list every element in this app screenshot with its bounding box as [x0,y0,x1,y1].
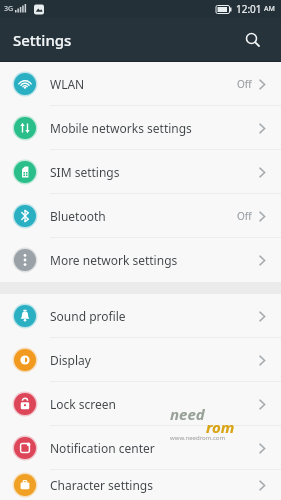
staticText: AM [264,4,275,14]
button[interactable]: Sound profile [0,294,281,338]
staticText: rom [206,417,235,437]
staticText: SIM settings [50,164,120,180]
staticText: More network settings [50,252,178,268]
staticText: Sound profile [50,308,126,324]
button[interactable]: Character settings [0,470,281,500]
staticText: Display [50,352,91,368]
staticText: Bluetooth [50,208,106,224]
button[interactable]: Display [0,338,281,382]
staticText: Mobile networks settings [50,120,192,136]
staticText: WLAN [50,76,85,92]
staticText: www.needrom.com [170,434,226,442]
button[interactable]: Lock screen [0,382,281,426]
button[interactable]: WLAN [0,62,281,106]
staticText: Off [237,77,252,91]
button[interactable]: Bluetooth [0,194,281,238]
button[interactable]: Mobile networks settings [0,106,281,150]
button[interactable]: Notification center [0,426,281,470]
staticText: 3G [4,4,14,14]
button[interactable]: More network settings [0,238,281,282]
button[interactable]: SIM settings [0,150,281,194]
button[interactable] [241,28,265,52]
staticText: Lock screen [50,396,117,412]
staticText: need [170,404,205,424]
staticText: Notification center [50,440,155,456]
staticText: Off [237,209,252,223]
staticText: Character settings [50,477,153,493]
staticText: Settings [13,30,72,50]
staticText: 12:01 [236,2,262,16]
